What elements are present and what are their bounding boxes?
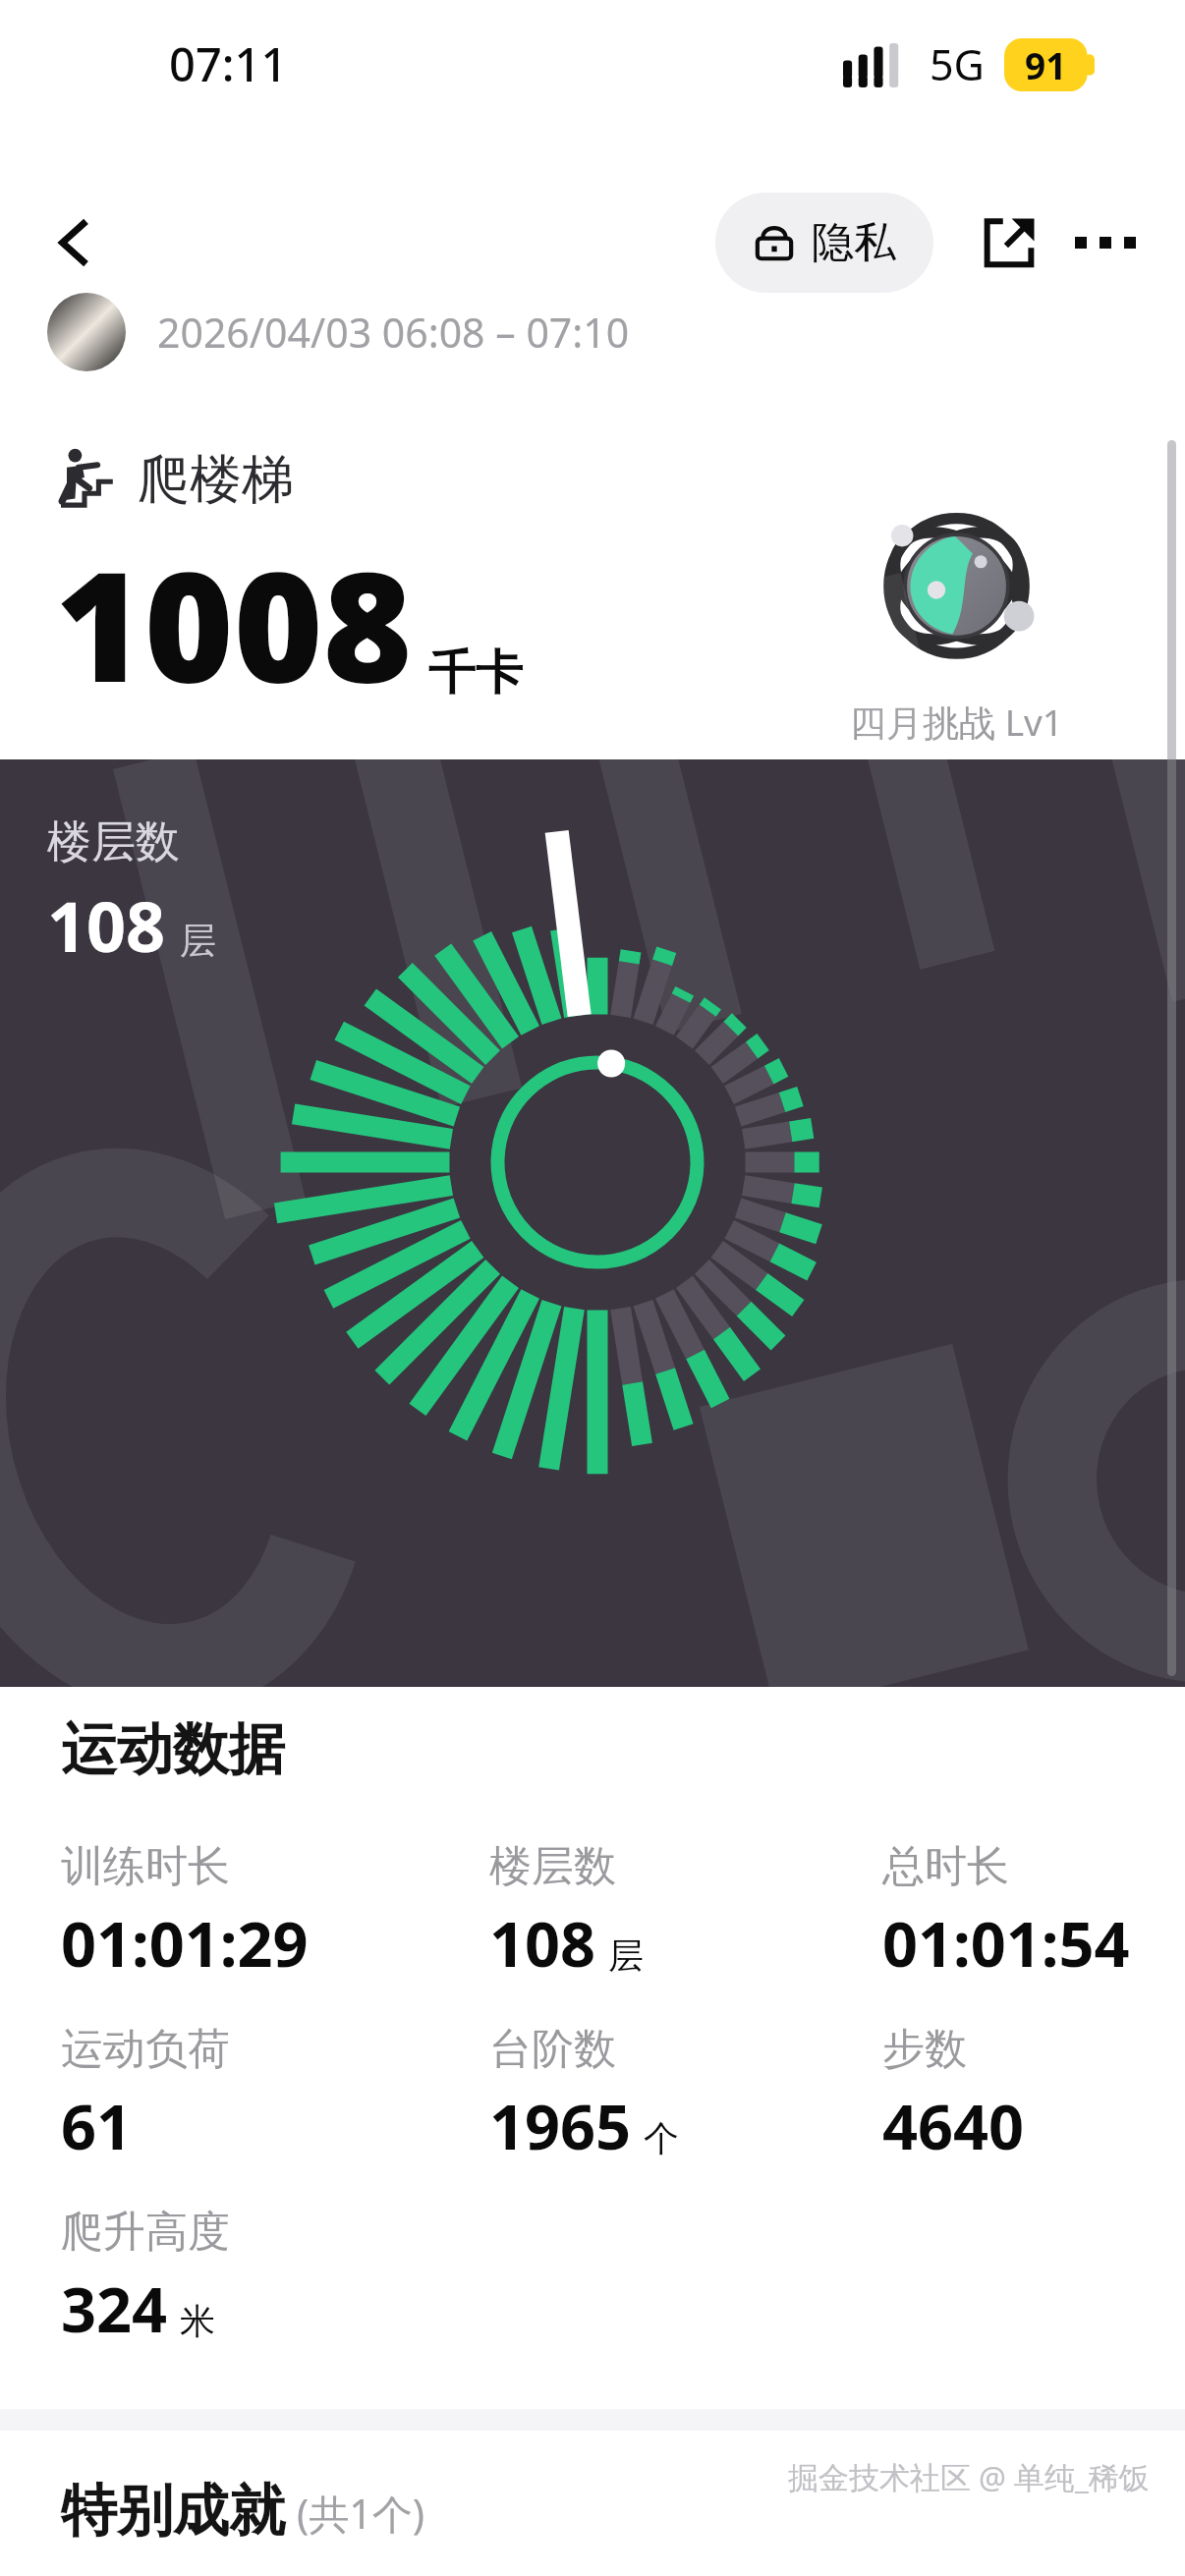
staticText: 01:01:29 (61, 1901, 309, 1986)
staticText: 米 (180, 2299, 215, 2343)
staticText: 1008 (55, 519, 413, 726)
staticText: 四月挑战 Lv1 (850, 697, 1063, 747)
button[interactable]: 台阶数 (489, 2023, 679, 2168)
button[interactable]: 总时长 (882, 1840, 1130, 1986)
staticText: 爬楼梯 (138, 447, 294, 513)
staticText: 楼层数 (47, 814, 180, 870)
staticText: 324 (61, 2267, 168, 2351)
staticText: 运动数据 (61, 1714, 285, 1785)
button[interactable]: 楼层数 (489, 1840, 644, 1986)
staticText: 台阶数 (489, 2023, 616, 2076)
staticText: (共1个) (297, 2486, 425, 2541)
staticText: 步数 (882, 2023, 967, 2076)
staticText: 61 (61, 2084, 133, 2168)
button[interactable]: 步数 (882, 2023, 1025, 2168)
staticText: 108 (489, 1901, 596, 1986)
staticText: 91 (1025, 40, 1067, 89)
staticText: 108 (47, 878, 166, 972)
button[interactable]: 运动负荷 (61, 2023, 230, 2168)
staticText: 特别成就 (61, 2476, 285, 2547)
button[interactable]: 四月挑战 Lv1 (833, 489, 1079, 747)
staticText: 5G (930, 35, 985, 93)
button[interactable]: More options (1061, 198, 1150, 287)
staticText: 2026/04/03 06:08 – 07:10 (157, 305, 630, 360)
staticText: 千卡 (428, 644, 523, 702)
staticText: 楼层数 (489, 1840, 616, 1893)
button[interactable]: Share (965, 198, 1053, 287)
button[interactable]: 训练时长 (61, 1840, 309, 1986)
staticText: 4640 (882, 2084, 1025, 2168)
button[interactable]: 隐私 (715, 193, 933, 293)
staticText: 隐私 (812, 216, 896, 269)
button[interactable]: Back (26, 194, 124, 292)
staticText: 训练时长 (61, 1840, 230, 1893)
staticText: 运动负荷 (61, 2023, 230, 2076)
staticText: 总时长 (882, 1840, 1009, 1893)
staticText: 07:11 (169, 32, 288, 95)
staticText: 掘金技术社区 @ 单纯_稀饭 (788, 2456, 1150, 2497)
staticText: 01:01:54 (882, 1901, 1130, 1986)
button[interactable]: 爬升高度 (61, 2206, 230, 2351)
staticText: 个 (644, 2116, 679, 2160)
staticText: 层 (608, 1933, 644, 1978)
staticText: 层 (180, 918, 216, 964)
staticText: 爬升高度 (61, 2206, 230, 2259)
staticText: 1965 (489, 2084, 632, 2168)
